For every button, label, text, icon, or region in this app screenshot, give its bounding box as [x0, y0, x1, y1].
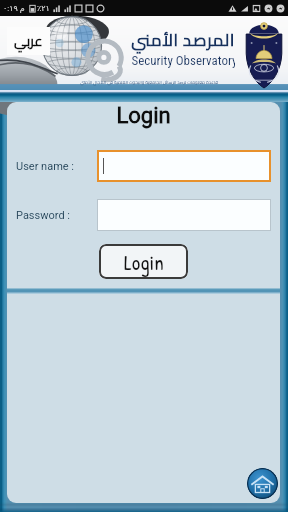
button[interactable]: Home — [247, 468, 278, 499]
staticText: User name : — [16, 160, 75, 173]
staticText: Login — [7, 103, 280, 129]
button[interactable]: Login — [99, 244, 188, 279]
staticText: Security Observatory — [131, 53, 235, 68]
button[interactable] — [97, 199, 271, 231]
staticText: قاعدة معلومات لرصد الرسائل الجامعية والب… — [58, 78, 240, 87]
staticText: Login — [124, 248, 164, 276]
staticText: ٪٢١ — [37, 4, 50, 13]
button[interactable] — [97, 150, 271, 182]
staticText: عربي — [14, 28, 43, 54]
staticText: Password : — [16, 209, 70, 222]
staticText: م ٠:١٩ — [3, 4, 25, 13]
staticText: المرصد الأمني — [131, 24, 235, 56]
button[interactable]: عربي — [14, 28, 43, 54]
